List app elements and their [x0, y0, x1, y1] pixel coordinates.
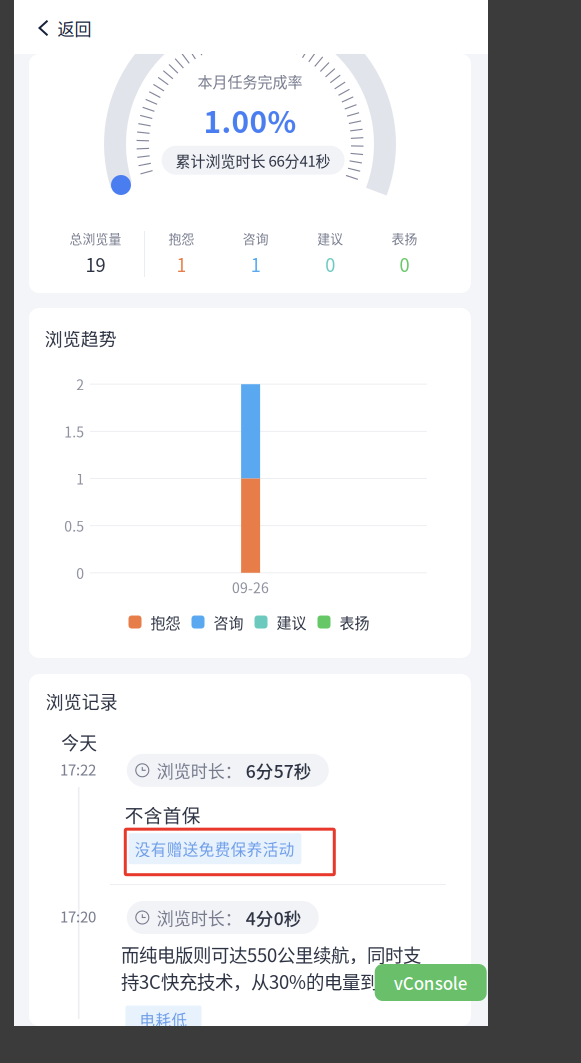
staticText: 19: [86, 251, 106, 277]
staticText: 没有赠送免费保养活动: [135, 837, 295, 860]
staticText: 浏览趋势: [45, 325, 117, 351]
staticText: 电耗低: [139, 1008, 187, 1031]
button[interactable]: vConsole: [375, 964, 487, 1001]
staticText: 返回: [57, 16, 91, 40]
staticText: 2: [76, 374, 84, 394]
staticText: 1: [76, 468, 84, 489]
staticText: 17:20: [60, 905, 96, 927]
staticText: 表扬: [392, 229, 418, 247]
staticText: 咨询: [213, 611, 243, 633]
staticText: 浏览时长：: [157, 758, 242, 783]
staticText: 1.00%: [203, 98, 296, 141]
staticText: 0: [325, 251, 335, 277]
staticText: 今天: [61, 729, 97, 755]
staticText: 总浏览量: [70, 229, 122, 247]
staticText: 浏览记录: [46, 688, 118, 714]
staticText: 不含首保: [125, 801, 201, 828]
staticText: 建议: [317, 229, 343, 247]
staticText: 1.5: [64, 421, 84, 441]
staticText: 而纯电版则可达550公里续航，同时支持3C快充技术，从30%的电量到: [121, 941, 421, 994]
staticText: 4分0秒: [246, 905, 302, 930]
button[interactable]: 返回: [14, 0, 109, 56]
staticText: 0: [400, 251, 410, 277]
staticText: 1: [251, 251, 261, 277]
staticText: 咨询: [243, 229, 269, 247]
staticText: 0.5: [64, 515, 84, 536]
staticText: 09-26: [232, 577, 269, 597]
staticText: 建议: [276, 611, 306, 633]
staticText: 抱怨: [150, 611, 180, 633]
staticText: 17:22: [60, 758, 96, 780]
staticText: vConsole: [394, 970, 468, 995]
staticText: 本月任务完成率: [197, 70, 302, 92]
staticText: 抱怨: [168, 229, 194, 247]
staticText: 1: [176, 251, 186, 277]
staticText: 0: [76, 563, 84, 583]
staticText: 6分57秒: [246, 758, 312, 783]
staticText: 表扬: [339, 611, 369, 633]
staticText: 累计浏览时长 66分41秒: [176, 149, 331, 171]
staticText: 浏览时长：: [157, 905, 242, 930]
